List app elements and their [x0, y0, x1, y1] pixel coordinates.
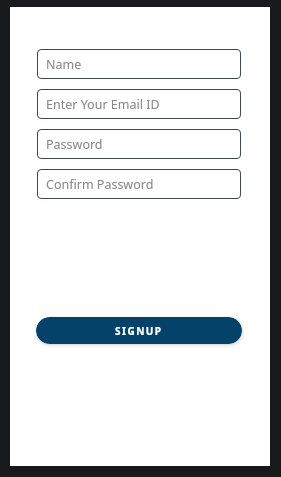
staticText: Enter Your Email ID — [46, 96, 160, 113]
button[interactable]: Confirm Password — [37, 169, 241, 199]
button[interactable]: Enter Your Email ID — [37, 89, 241, 119]
staticText: SIGNUP — [115, 324, 163, 338]
button[interactable]: SIGNUP — [36, 317, 242, 344]
button[interactable]: Name — [37, 49, 241, 79]
button[interactable]: Password — [37, 129, 241, 159]
staticText: Name — [46, 56, 82, 73]
staticText: Password — [46, 136, 103, 153]
staticText: Confirm Password — [46, 176, 154, 193]
